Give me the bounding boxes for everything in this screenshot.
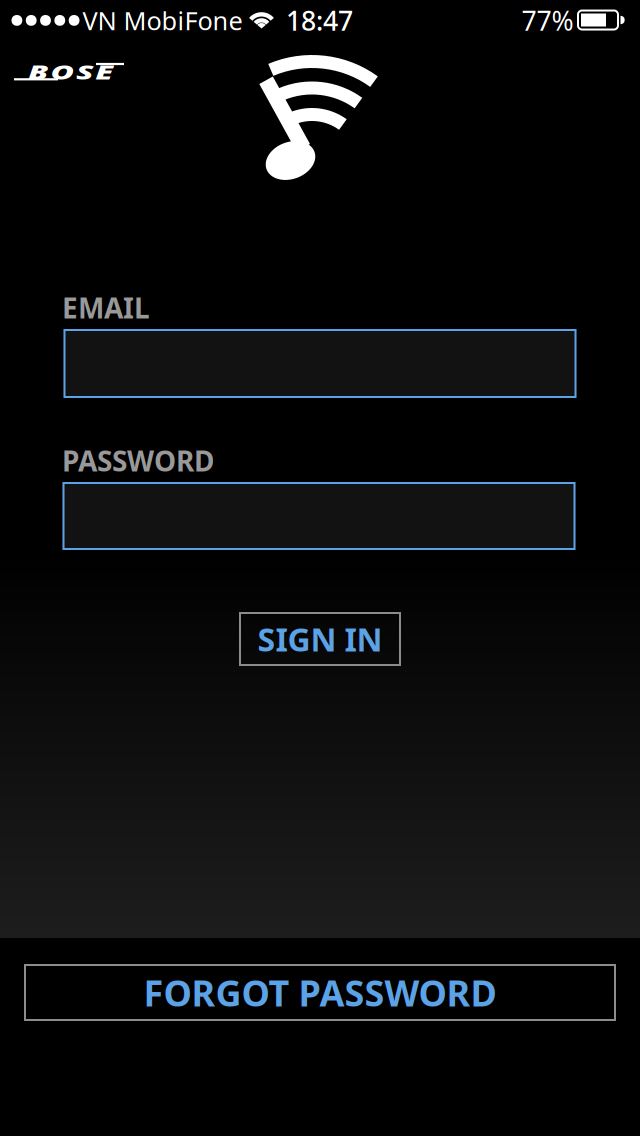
staticText: VN MobiFone xyxy=(82,4,242,37)
staticText: SIGN IN xyxy=(257,618,382,660)
staticText: 18:47 xyxy=(286,3,353,38)
staticText: PASSWORD xyxy=(62,442,214,479)
staticText: BOSE xyxy=(44,58,97,85)
button[interactable]: FORGOT PASSWORD xyxy=(24,964,616,1021)
staticText: EMAIL xyxy=(62,289,150,326)
staticText: 77% xyxy=(521,3,573,38)
staticText: FORGOT PASSWORD xyxy=(143,969,496,1016)
button[interactable] xyxy=(63,329,576,398)
button[interactable]: SIGN IN xyxy=(239,612,401,666)
button[interactable] xyxy=(62,482,575,550)
